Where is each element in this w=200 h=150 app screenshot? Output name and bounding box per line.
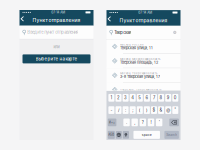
button[interactable]: ; xyxy=(130,106,136,114)
button[interactable]: space xyxy=(133,131,160,139)
staticText: 07:14 AM xyxy=(138,11,152,14)
staticText: 3 xyxy=(124,95,127,100)
staticText: Тверская xyxy=(114,30,131,35)
button[interactable]: АБВ xyxy=(108,131,115,139)
button[interactable]: Сменить язык xyxy=(116,131,122,139)
staticText: Пункт отправления xyxy=(32,17,80,23)
staticText: 6 xyxy=(145,95,148,100)
button[interactable]: #+= xyxy=(108,118,116,126)
staticText: space xyxy=(142,133,152,137)
staticText: 1 xyxy=(110,95,112,100)
staticText: 4 xyxy=(131,95,134,100)
staticText: Введите пункт отправления xyxy=(27,30,78,35)
staticText: , xyxy=(134,120,135,125)
button[interactable]: ) xyxy=(144,106,150,114)
staticText: Search xyxy=(166,133,177,137)
button[interactable]: Выберите на карте xyxy=(22,54,90,63)
staticText: ( xyxy=(139,108,141,113)
button[interactable]: Москва, Тверская область xyxy=(106,68,180,83)
staticText: АБВ xyxy=(108,133,114,137)
staticText: #+= xyxy=(109,121,115,124)
staticText: Москва, Московская область xyxy=(120,57,160,60)
button[interactable]: : xyxy=(123,106,129,114)
staticText: & xyxy=(160,108,163,113)
button[interactable]: 1 xyxy=(108,94,114,102)
button[interactable]: 5 xyxy=(137,94,143,102)
button[interactable]: 9 xyxy=(165,94,171,102)
button[interactable]: Диктовка xyxy=(123,131,129,139)
button[interactable]: Очистить xyxy=(172,30,177,35)
staticText: ✕ xyxy=(174,31,176,34)
staticText: ; xyxy=(132,108,133,113)
staticText: 9 xyxy=(167,95,170,100)
staticText: Москва, Россия xyxy=(120,43,143,46)
button[interactable]: " xyxy=(172,106,178,114)
staticText: : xyxy=(125,108,126,113)
button[interactable]: 6 xyxy=(144,94,150,102)
button[interactable]: Search xyxy=(164,131,179,139)
staticText: ) xyxy=(146,108,148,113)
button[interactable]: 4 xyxy=(130,94,136,102)
staticText: 8 xyxy=(160,95,163,100)
button[interactable]: 7 xyxy=(151,94,157,102)
staticText: Выберите на карте xyxy=(35,56,77,61)
staticText: Пункт отправления xyxy=(119,17,167,23)
button[interactable]: 3 xyxy=(123,94,129,102)
staticText: 0 xyxy=(174,95,177,100)
staticText: " xyxy=(174,108,176,113)
button[interactable]: Удалить xyxy=(169,118,179,126)
button[interactable]: Москва, Московская область xyxy=(106,54,180,68)
staticText: 07:14 AM xyxy=(51,10,65,14)
staticText: / xyxy=(118,108,119,113)
button[interactable]: Озерское, Тверская область xyxy=(106,83,180,91)
staticText: ' xyxy=(159,120,160,125)
staticText: @ xyxy=(166,108,170,113)
button[interactable]: ! xyxy=(148,118,154,126)
button[interactable]: . xyxy=(123,118,130,126)
staticText: Тверская площадь, 12 xyxy=(120,60,158,65)
staticText: $ xyxy=(152,108,155,113)
staticText: Москва, Тверская область xyxy=(120,72,157,75)
button[interactable]: , xyxy=(131,118,138,126)
staticText: Тверская улица, 11 xyxy=(120,46,153,50)
button[interactable]: Москва, Россия xyxy=(106,39,180,54)
staticText: 5 xyxy=(138,95,141,100)
staticText: Озерское, Тверская область xyxy=(120,88,161,91)
staticText: - xyxy=(110,108,112,113)
button[interactable]: 0 xyxy=(172,94,178,102)
button[interactable]: - xyxy=(108,106,114,114)
button[interactable]: Назад xyxy=(106,16,115,25)
staticText: или xyxy=(53,45,59,49)
button[interactable]: ' xyxy=(156,118,162,126)
button[interactable]: / xyxy=(115,106,121,114)
button[interactable]: & xyxy=(158,106,164,114)
staticText: ! xyxy=(150,120,151,125)
button[interactable]: Назад xyxy=(19,15,28,25)
staticText: ? xyxy=(142,120,144,125)
button[interactable]: $ xyxy=(151,106,157,114)
button[interactable]: ( xyxy=(137,106,143,114)
button[interactable]: 8 xyxy=(158,94,164,102)
button[interactable]: @ xyxy=(165,106,171,114)
staticText: 3-я Тверская улица, 17 xyxy=(120,74,160,79)
button[interactable]: 2 xyxy=(115,94,121,102)
staticText: 7 xyxy=(153,95,155,100)
staticText: 2 xyxy=(117,95,120,100)
staticText: . xyxy=(126,120,127,125)
button[interactable]: ? xyxy=(140,118,146,126)
